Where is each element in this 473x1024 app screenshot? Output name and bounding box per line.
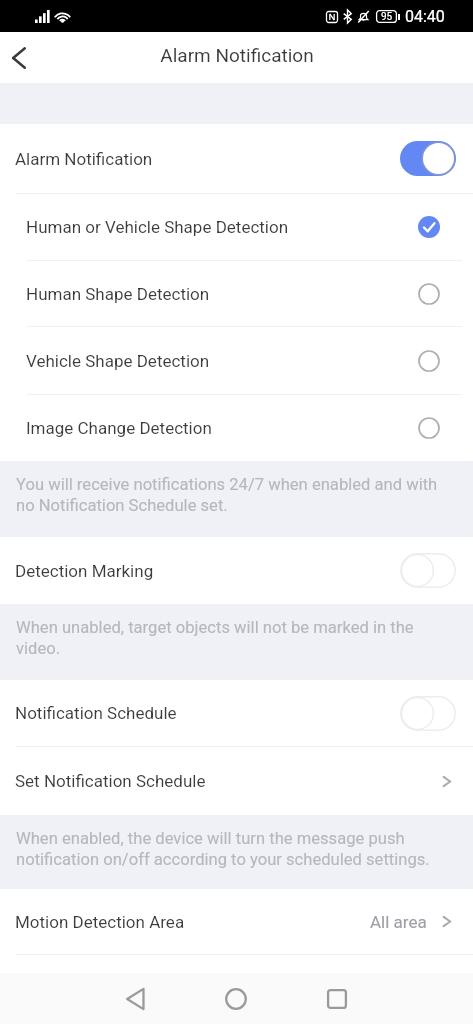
staticText: When enabled, the device will turn the m… bbox=[16, 829, 442, 869]
staticText: Image Change Detection bbox=[26, 418, 212, 438]
staticText: When unabled, target objects will not be… bbox=[16, 618, 442, 658]
staticText: Set Notification Schedule bbox=[15, 771, 206, 791]
button[interactable]: Human or Vehicle Shape Detection bbox=[0, 194, 473, 260]
staticText: Detection Marking bbox=[15, 561, 154, 581]
button[interactable]: Switch on bbox=[400, 141, 456, 176]
button[interactable]: Switch off bbox=[400, 553, 456, 588]
staticText: Motion Detection Area bbox=[15, 912, 185, 932]
staticText: Human Shape Detection bbox=[26, 284, 210, 304]
button[interactable]: Back bbox=[0, 32, 44, 83]
button[interactable]: Recent apps bbox=[312, 973, 362, 1024]
staticText: All area bbox=[370, 912, 427, 932]
staticText: 04:40 bbox=[405, 7, 445, 26]
button[interactable]: Set Notification Schedule bbox=[0, 747, 473, 815]
staticText: Human or Vehicle Shape Detection bbox=[26, 217, 289, 237]
button[interactable]: Vehicle Shape Detection bbox=[0, 327, 473, 394]
button[interactable]: Home bbox=[211, 973, 261, 1024]
staticText: Vehicle Shape Detection bbox=[26, 351, 210, 371]
button[interactable]: Image Change Detection bbox=[0, 395, 473, 461]
button[interactable]: Notification Schedule bbox=[0, 680, 473, 746]
button[interactable]: Alarm Notification bbox=[0, 124, 473, 193]
button[interactable]: Human Shape Detection bbox=[0, 261, 473, 326]
button[interactable]: Switch off bbox=[400, 696, 456, 731]
staticText: 95 bbox=[381, 11, 393, 23]
staticText: Alarm Notification bbox=[160, 44, 314, 66]
staticText: You will receive notifications 24/7 when… bbox=[16, 475, 442, 515]
staticText: Alarm Notification bbox=[15, 149, 153, 169]
button[interactable]: Back bbox=[110, 973, 160, 1024]
staticText: Notification Schedule bbox=[15, 703, 177, 723]
button[interactable]: Detection Marking bbox=[0, 537, 473, 604]
button[interactable]: Motion Detection Area bbox=[0, 889, 473, 954]
